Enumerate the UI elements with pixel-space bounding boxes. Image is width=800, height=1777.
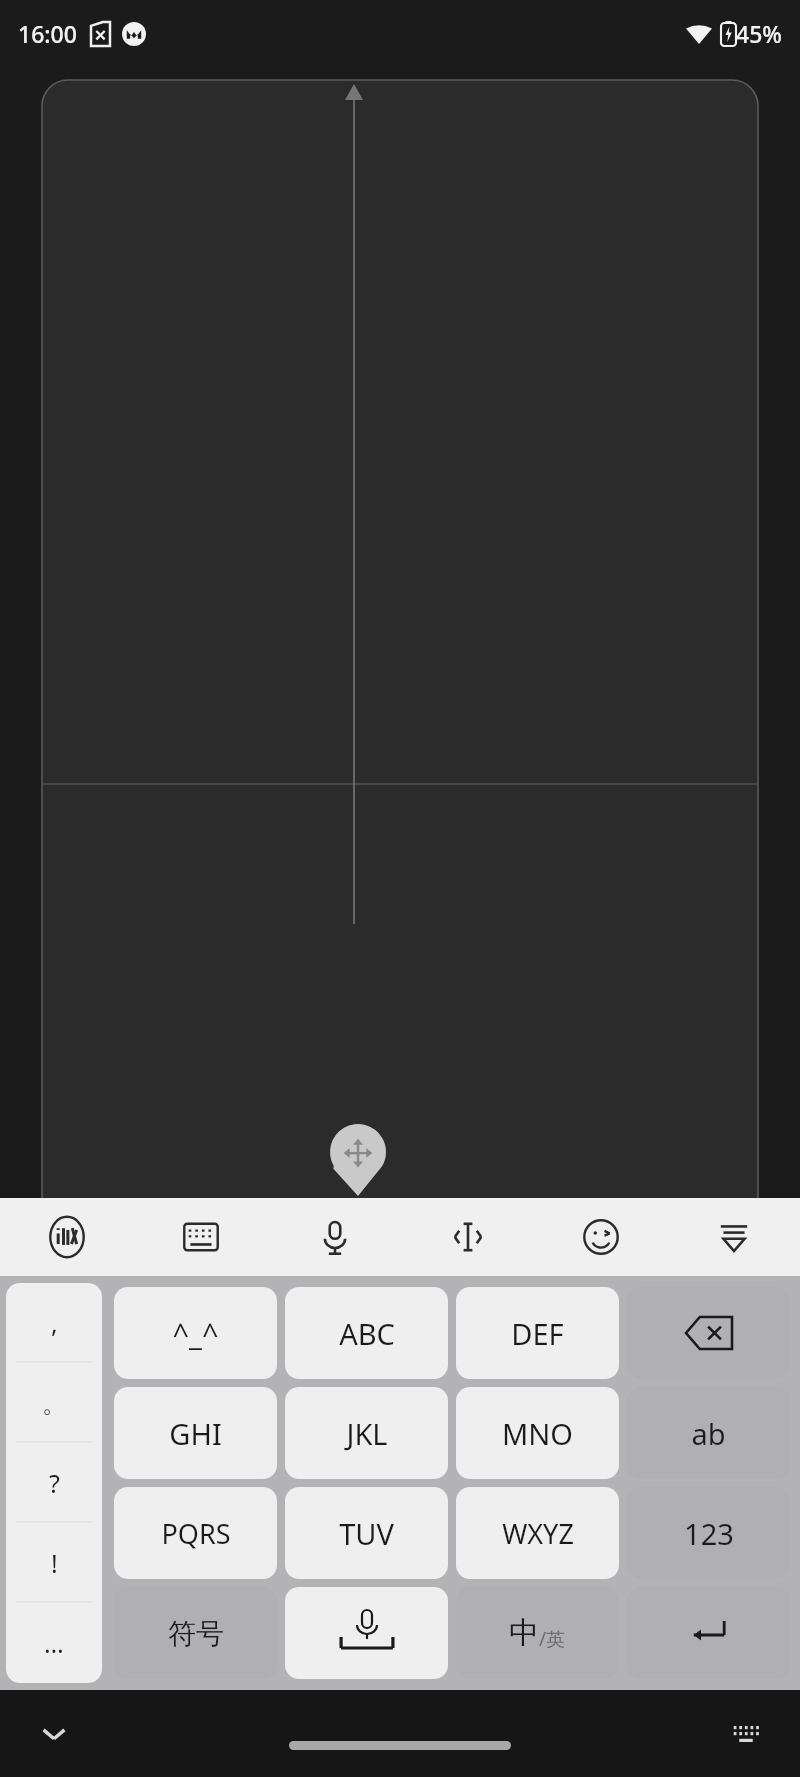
button[interactable]: Cursor control <box>401 1198 534 1276</box>
button[interactable]: DEF <box>456 1287 619 1379</box>
button[interactable]: MNO <box>456 1387 619 1479</box>
button[interactable]: Switch keyboard <box>722 1710 770 1758</box>
staticText: 123 <box>684 1514 734 1553</box>
button[interactable]: Apps grid <box>694 1594 738 1638</box>
button[interactable]: Emoji <box>534 1198 667 1276</box>
button[interactable]: Voice input <box>268 1198 401 1276</box>
staticText: … <box>44 1626 64 1660</box>
button[interactable]: 中 <box>456 1587 619 1679</box>
staticText: 45% <box>736 18 782 49</box>
button[interactable]: TUV <box>285 1487 448 1579</box>
staticText: GHI <box>169 1414 222 1453</box>
button[interactable]: IME settings <box>0 1198 134 1276</box>
button[interactable]: WXYZ <box>456 1487 619 1579</box>
button[interactable]: 123 <box>627 1487 790 1579</box>
staticText: , <box>51 1306 58 1340</box>
button[interactable]: ? <box>6 1443 102 1523</box>
staticText: ^_^ <box>172 1314 219 1353</box>
button[interactable]: del <box>627 1287 790 1379</box>
staticText: ab <box>691 1414 726 1453</box>
button[interactable]: , <box>6 1283 102 1363</box>
staticText: 符号 <box>168 1616 224 1651</box>
staticText: JKL <box>346 1414 388 1453</box>
button[interactable]: space <box>285 1587 448 1679</box>
button[interactable]: ! <box>6 1523 102 1603</box>
button[interactable]: ABC <box>285 1287 448 1379</box>
staticText: ! <box>51 1546 58 1580</box>
staticText: TUV <box>339 1514 394 1553</box>
staticText: 。 <box>42 1388 67 1419</box>
staticText: MNO <box>502 1414 573 1453</box>
button[interactable]: PQRS <box>114 1487 277 1579</box>
button[interactable]: ab <box>627 1387 790 1479</box>
staticText: 16:00 <box>18 18 77 49</box>
button[interactable]: Hide keyboard <box>30 1710 78 1758</box>
staticText: 中 <box>509 1614 539 1652</box>
staticText: ? <box>49 1466 60 1500</box>
button[interactable]: GHI <box>114 1387 277 1479</box>
button[interactable]: JKL <box>285 1387 448 1479</box>
button[interactable]: enter <box>627 1587 790 1679</box>
button[interactable]: … <box>6 1603 102 1683</box>
button[interactable]: 符号 <box>114 1587 277 1679</box>
staticText: PQRS <box>161 1515 231 1552</box>
staticText: ABC <box>339 1314 395 1353</box>
button[interactable]: ^_^ <box>114 1287 277 1379</box>
staticText: DEF <box>511 1314 564 1353</box>
staticText: /英 <box>539 1626 566 1652</box>
staticText: WXYZ <box>502 1515 574 1552</box>
button[interactable]: 。 <box>6 1363 102 1443</box>
button[interactable]: Keyboard layout <box>134 1198 268 1276</box>
button[interactable]: Collapse <box>667 1198 800 1276</box>
